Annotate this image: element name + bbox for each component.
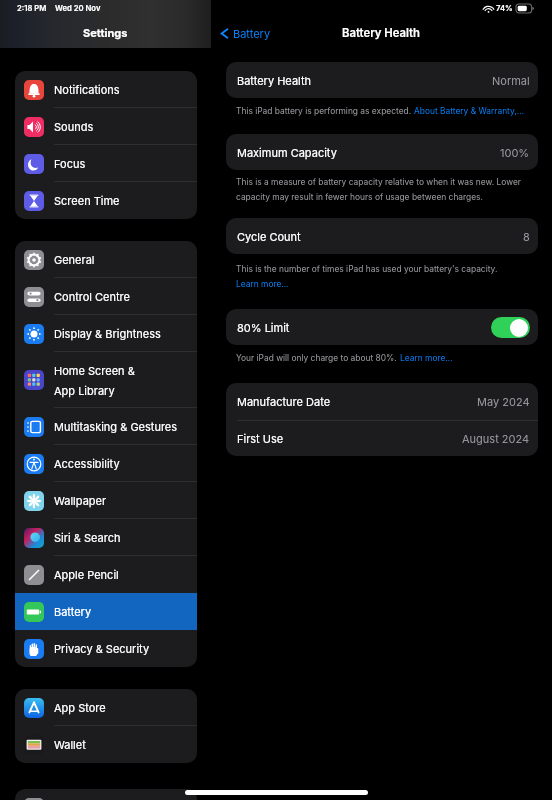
staticText: Wallet [54,738,86,751]
staticText: Cycle Count [237,230,301,243]
staticText: General [54,253,95,266]
staticText: Apple Pencil [54,568,119,581]
button[interactable]: Passwords [15,789,197,800]
staticText: Accessibility [54,457,120,470]
button[interactable]: Focus [15,145,197,182]
staticText: First Use [237,432,284,445]
button[interactable]: Back to Battery [219,26,271,41]
staticText: Home Screen & [54,364,135,377]
staticText: 8 [523,230,530,243]
staticText: App Store [54,701,106,714]
staticText: Battery [54,605,92,618]
button[interactable]: Screen Time [15,182,197,219]
button[interactable]: Wallpaper [15,482,197,519]
staticText: This is the number of times iPad has use… [236,264,498,274]
staticText: Notifications [54,83,120,96]
button[interactable]: 80% Limit toggle, on [491,317,530,338]
staticText: Multitasking & Gestures [54,420,178,433]
button[interactable]: Siri & Search [15,519,197,556]
button[interactable]: Sounds [15,108,197,145]
other: Back to Battery [219,26,230,41]
staticText: Siri & Search [54,531,121,544]
staticText: Maximum Capacity [237,146,337,159]
staticText: 74% [496,4,513,13]
staticText: Control Centre [54,290,130,303]
staticText: Sounds [54,120,94,133]
button[interactable]: Control Centre [15,278,197,315]
staticText: Wallpaper [54,494,107,507]
button[interactable]: Notifications [15,71,197,108]
staticText: Screen Time [54,194,120,207]
button[interactable]: Battery [15,593,197,630]
staticText: May 2024 [477,395,530,408]
button[interactable]: Apple Pencil [15,556,197,593]
staticText: Display & Brightness [54,327,161,340]
staticText: About Battery & Warranty,… [414,106,525,116]
button[interactable]: App Store [15,689,197,726]
staticText: This iPad battery is performing as expec… [236,106,414,116]
button[interactable]: 80% Limit [226,309,538,345]
staticText: Your iPad will only charge to about 80%. [236,353,400,363]
button[interactable]: General [15,241,197,278]
staticText: Privacy & Security [54,642,150,655]
button[interactable]: Wallet [15,726,197,763]
staticText: 80% Limit [237,321,290,334]
staticText: Manufacture Date [237,395,331,408]
staticText: This is a measure of battery capacity re… [236,177,521,202]
staticText: Normal [492,74,530,87]
button[interactable]: Accessibility [15,445,197,482]
staticText: Focus [54,157,86,170]
staticText: August 2024 [462,432,530,445]
button[interactable]: Display & Brightness [15,315,197,352]
staticText: Wed 20 Nov [55,4,101,13]
button[interactable]: Cycle Count [226,218,538,254]
staticText: Learn more… [236,279,289,289]
button[interactable]: Manufacture Date [237,383,530,420]
button[interactable]: Battery Health [226,62,538,98]
staticText: Learn more… [400,353,453,363]
button[interactable]: Privacy & Security [15,630,197,667]
staticText: 2:18 PM [17,4,47,13]
staticText: Battery [233,27,271,40]
staticText: Settings [83,26,128,39]
staticText: Battery Health [342,26,421,40]
staticText: Battery Health [237,74,311,87]
button[interactable]: First Use [237,421,530,456]
staticText: 100% [500,146,530,159]
button[interactable]: Maximum Capacity [226,134,538,170]
button[interactable]: Home Screen & [15,352,197,408]
staticText: App Library [54,384,115,397]
button[interactable]: Multitasking & Gestures [15,408,197,445]
